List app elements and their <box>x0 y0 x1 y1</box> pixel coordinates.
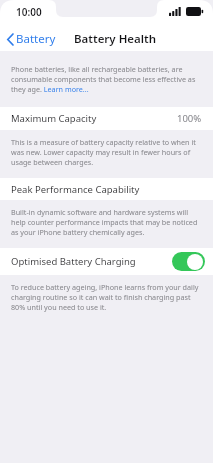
button[interactable]: Battery <box>0 28 64 50</box>
staticText: To reduce battery ageing, iPhone learns … <box>11 282 201 312</box>
staticText: Phone batteries, like all rechargeable b… <box>11 64 201 94</box>
button[interactable]: Optimised Battery Charging <box>0 248 213 275</box>
staticText: Peak Performance Capability <box>11 183 140 196</box>
staticText: Battery <box>16 31 56 47</box>
staticText: Maximum Capacity <box>11 112 97 125</box>
staticText: Optimised Battery Charging <box>11 255 136 268</box>
staticText: Battery Health <box>74 31 157 47</box>
button[interactable]: Phone batteries, like all rechargeable b… <box>0 64 213 94</box>
button[interactable]: Optimised Battery Charging toggle <box>172 252 205 271</box>
staticText: This is a measure of battery capacity re… <box>11 137 201 167</box>
staticText: 10:00 <box>16 5 42 19</box>
staticText: 100% <box>177 112 202 125</box>
button[interactable]: Maximum Capacity <box>0 107 213 130</box>
button[interactable]: Peak Performance Capability <box>0 178 213 200</box>
staticText: Built-in dynamic software and hardware s… <box>11 207 201 237</box>
